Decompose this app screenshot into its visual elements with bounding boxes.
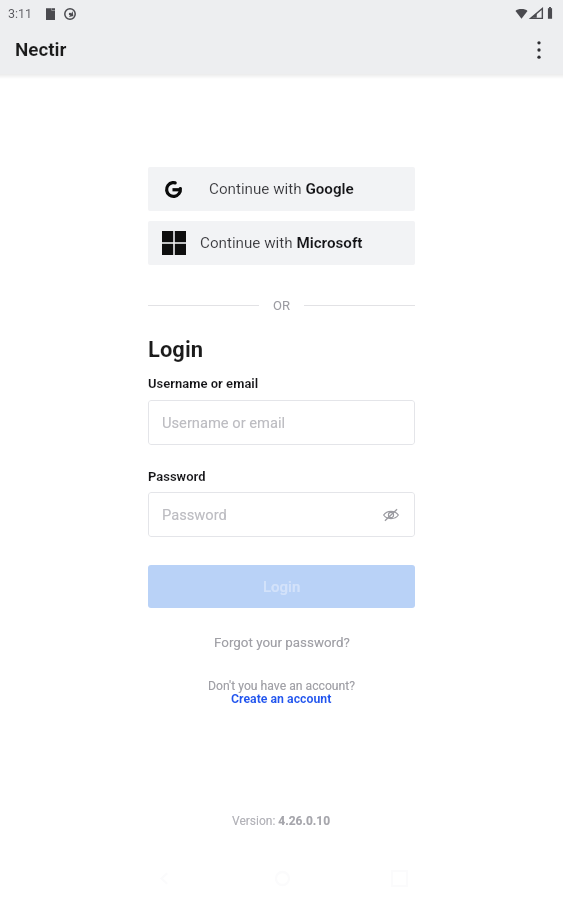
button[interactable]: Login [148,565,415,608]
button[interactable]: More options [515,26,563,74]
staticText: Login [263,578,301,596]
staticText: Login [148,337,204,363]
staticText: Version: 4.26.0.10 [232,814,331,828]
staticText: Username or email [148,376,259,391]
staticText: Password [162,506,227,523]
staticText: 3:11 [8,6,33,21]
staticText: Username or email [162,414,286,431]
staticText: OR [273,298,290,313]
staticText: Continue with Google [209,180,354,198]
staticText: Password [148,469,206,484]
button[interactable]: Create an account [231,692,332,706]
button[interactable]: Username or email [148,400,415,445]
staticText: Nectir [15,39,67,61]
button[interactable]: Password [148,492,415,537]
button[interactable]: Continue with Microsoft [148,221,415,265]
button[interactable]: Forgot your password? [214,635,350,651]
staticText: Don't you have an account? [208,679,356,693]
staticText: Continue with Microsoft [200,234,363,252]
button[interactable]: Show password [379,503,403,527]
button[interactable]: Continue with Google [148,167,415,211]
